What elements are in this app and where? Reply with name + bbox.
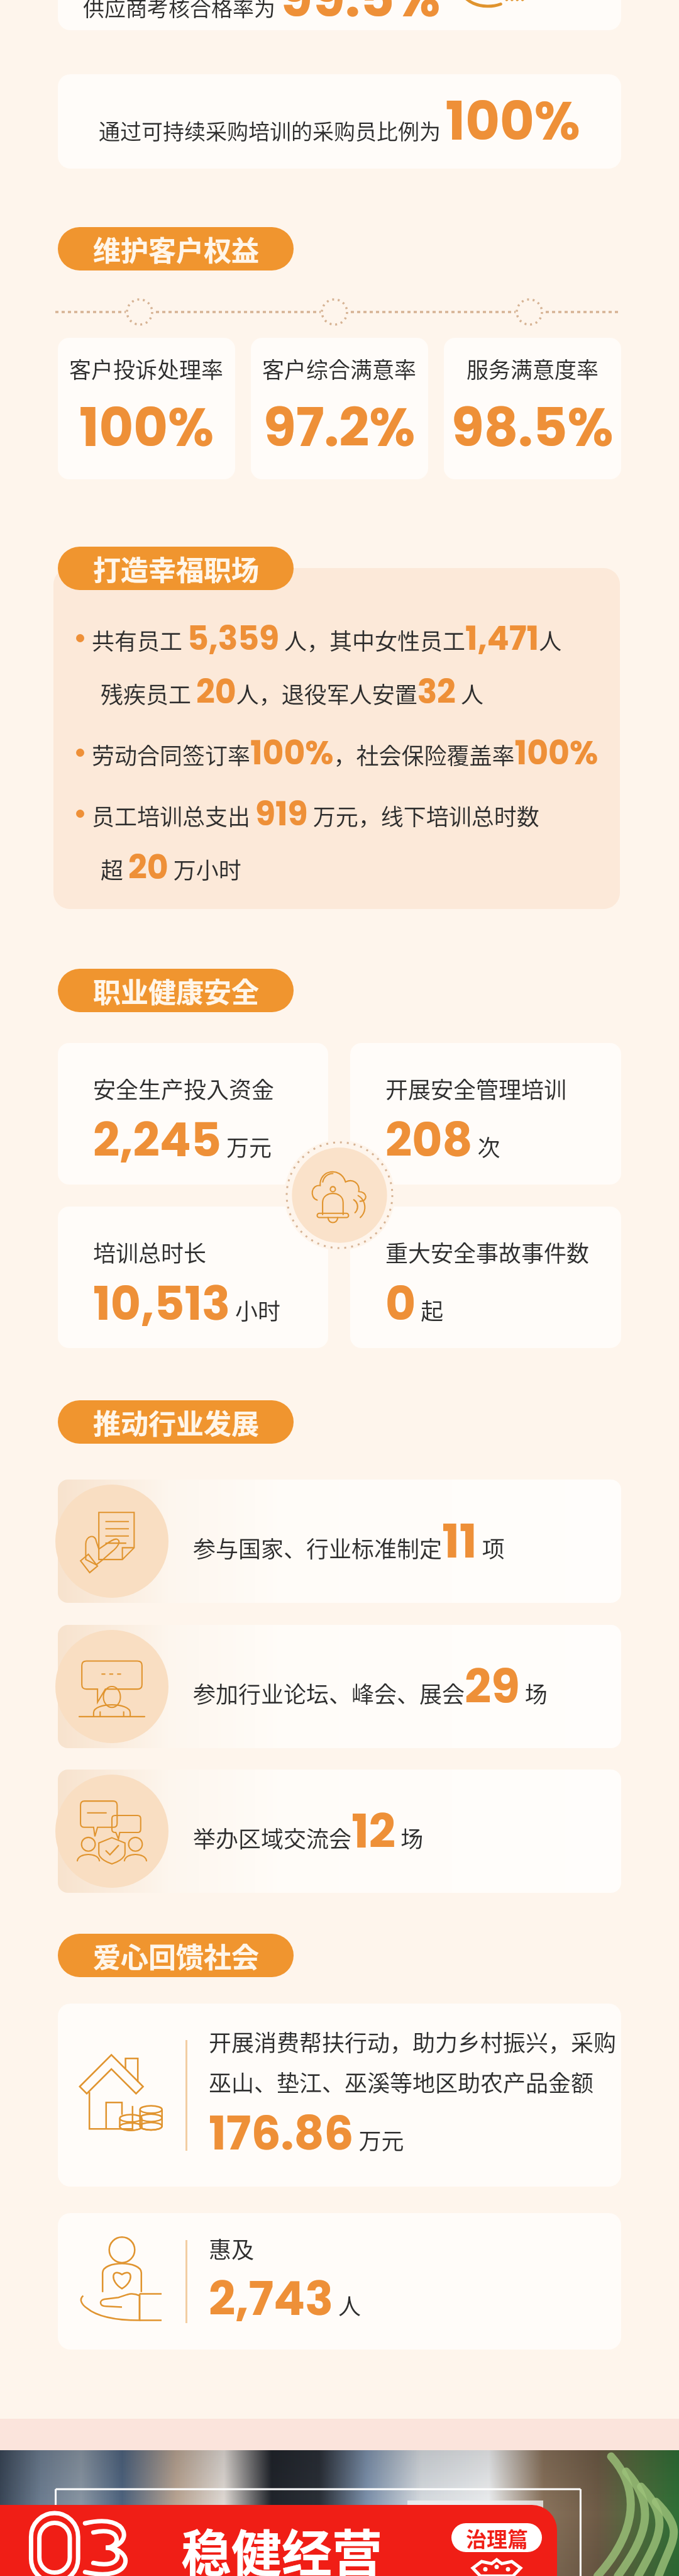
button[interactable]: 打造幸福职场 — [58, 547, 294, 590]
staticText: 员工培训总支出 919 万元，线下培训总时数 — [92, 791, 539, 837]
button[interactable]: 惠及 — [58, 2213, 621, 2350]
staticText: 参与国家、行业标准制定11 项 — [193, 1508, 505, 1574]
button[interactable]: 职业健康安全 — [58, 969, 294, 1012]
button[interactable]: 重大安全事故事件数 — [350, 1207, 621, 1348]
staticText: 安全生产投入资金 — [93, 1072, 275, 1105]
staticText: 重大安全事故事件数 — [385, 1235, 590, 1268]
staticText: 惠及 — [209, 2232, 255, 2265]
staticText: 参加行业论坛、峰会、展会29 场 — [193, 1654, 548, 1719]
staticText: 残疾员工 20人，退役军人安置32 人 — [101, 669, 483, 715]
staticText: 培训总时长 — [93, 1235, 207, 1268]
button[interactable]: 客户投诉处理率 — [58, 338, 235, 479]
staticText: 举办区域交流会12 场 — [193, 1798, 424, 1864]
staticText: 推动行业发展 — [93, 1402, 259, 1442]
staticText: 0 起 — [385, 1271, 444, 1336]
staticText: 巫山、垫江、巫溪等地区助农产品金额 — [209, 2065, 594, 2098]
staticText: 治理篇 — [466, 2523, 528, 2552]
button[interactable]: 爱心回馈社会 — [58, 1934, 294, 1977]
button[interactable]: 客户综合满意率 — [251, 338, 428, 479]
staticText: 服务满意度率 — [466, 352, 599, 384]
staticText: 通过可持续采购培训的采购员比例为 100% — [99, 84, 580, 159]
button[interactable]: 开展消费帮扶行动，助力乡村振兴，采购 — [58, 2004, 621, 2187]
staticText: 2,245 万元 — [93, 1107, 272, 1173]
staticText: 供应商考核合格率为 99.5% — [83, 0, 441, 30]
staticText: 稳健经营 — [181, 2513, 382, 2576]
button[interactable]: 通过可持续采购培训的采购员比例为 100% — [58, 74, 621, 169]
staticText: 开展消费帮扶行动，助力乡村振兴，采购 — [209, 2025, 617, 2058]
button[interactable]: 服务满意度率 — [444, 338, 621, 479]
staticText: 职业健康安全 — [93, 971, 259, 1011]
staticText: 208 次 — [385, 1107, 500, 1173]
button[interactable]: 维护客户权益 — [58, 227, 294, 270]
staticText: 客户投诉处理率 — [69, 352, 224, 384]
staticText: 客户综合满意率 — [262, 352, 417, 384]
staticText: 98.5% — [451, 391, 614, 465]
staticText: 打造幸福职场 — [93, 549, 259, 589]
staticText: 100% — [79, 391, 214, 465]
button[interactable]: 培训总时长 — [58, 1207, 328, 1348]
staticText: 2,743 人 — [209, 2266, 362, 2331]
staticText: 劳动合同签订率100%，社会保险覆盖率100% — [92, 730, 599, 776]
staticText: 共有员工 5,359 人，其中女性员工1,471人 — [92, 615, 562, 661]
button[interactable]: 安全生产投入资金 — [58, 1043, 328, 1185]
staticText: 超 20 万小时 — [101, 844, 241, 890]
button[interactable] — [58, 1480, 621, 1603]
button[interactable] — [58, 1770, 621, 1893]
button[interactable]: 开展安全管理培训 — [350, 1043, 621, 1185]
button[interactable] — [58, 1625, 621, 1748]
staticText: 176.86 万元 — [209, 2100, 404, 2166]
button[interactable]: 推动行业发展 — [58, 1400, 294, 1444]
staticText: 97.2% — [263, 391, 416, 465]
button[interactable]: 供应商考核合格率为 99.5% — [58, 0, 621, 30]
staticText: 开展安全管理培训 — [385, 1072, 567, 1105]
staticText: 爱心回馈社会 — [93, 1936, 259, 1976]
staticText: 维护客户权益 — [93, 229, 259, 269]
staticText: 10,513 小时 — [93, 1271, 281, 1336]
